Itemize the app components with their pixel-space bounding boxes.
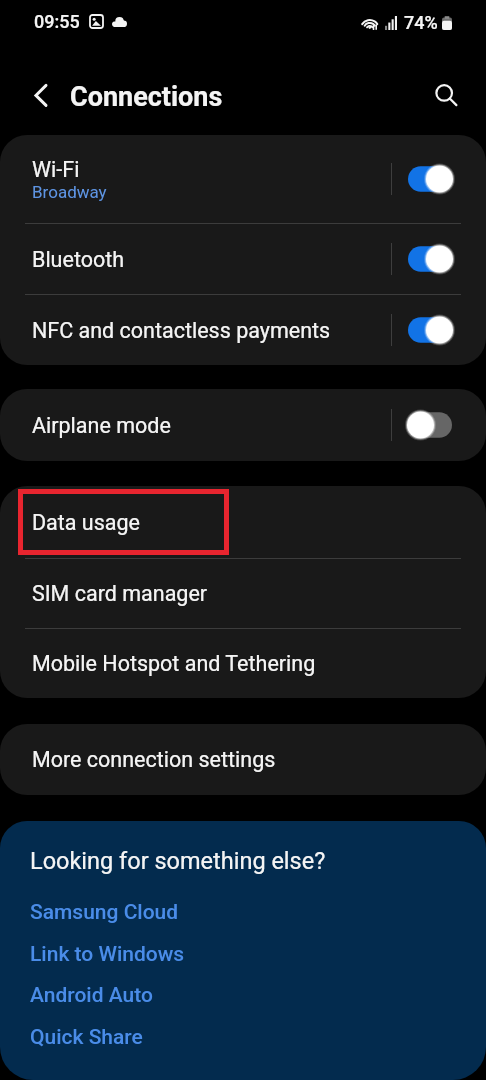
button[interactable]: Quick Share — [0, 1017, 486, 1058]
staticText: Mobile Hotspot and Tethering — [32, 651, 316, 676]
button[interactable]: Bluetooth — [0, 224, 486, 294]
staticText: Looking for something else? — [30, 847, 326, 875]
button[interactable]: On — [408, 244, 452, 274]
staticText: Link to Windows — [30, 942, 185, 967]
button[interactable]: Navigate up — [16, 69, 68, 121]
staticText: Android Auto — [30, 983, 153, 1008]
staticText: NFC and contactless payments — [32, 318, 331, 343]
button[interactable]: Off — [408, 410, 452, 440]
button[interactable]: SIM card manager — [0, 559, 486, 628]
staticText: Wi-Fi — [32, 157, 80, 182]
button[interactable]: Airplane mode — [0, 389, 486, 461]
staticText: 09:55 — [34, 11, 80, 32]
staticText: Data usage — [32, 510, 140, 535]
staticText: More connection settings — [32, 747, 276, 772]
button[interactable]: On — [408, 315, 452, 345]
button[interactable]: Wi-Fi — [0, 135, 486, 223]
staticText: Connections — [70, 81, 223, 113]
button[interactable]: Data usage — [0, 486, 486, 558]
staticText: Airplane mode — [32, 413, 171, 438]
staticText: SIM card manager — [32, 581, 208, 606]
button[interactable]: More connection settings — [0, 724, 486, 795]
button[interactable]: Search — [420, 69, 472, 121]
staticText: Bluetooth — [32, 247, 125, 272]
staticText: Quick Share — [30, 1025, 143, 1050]
button[interactable]: Samsung Cloud — [0, 892, 486, 933]
button[interactable]: Mobile Hotspot and Tethering — [0, 629, 486, 698]
button[interactable]: NFC and contactless payments — [0, 295, 486, 365]
button[interactable]: On — [408, 164, 452, 194]
staticText: Samsung Cloud — [30, 900, 179, 925]
staticText: Broadway — [32, 182, 107, 202]
staticText: 74% — [404, 12, 438, 33]
button[interactable]: Link to Windows — [0, 934, 486, 975]
button[interactable]: Android Auto — [0, 975, 486, 1016]
